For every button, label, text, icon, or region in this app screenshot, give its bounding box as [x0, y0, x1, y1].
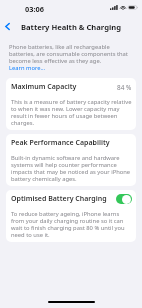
- staticText: 84 %: [117, 83, 132, 92]
- staticText: Built-in dynamic software and hardware s…: [11, 155, 132, 183]
- staticText: This is a measure of battery capacity re…: [11, 99, 132, 127]
- button[interactable]: Back: [1, 20, 14, 33]
- staticText: Battery Health & Charging: [21, 22, 121, 32]
- staticText: Phone batteries, like all rechargeable b…: [9, 44, 133, 65]
- staticText: To reduce battery ageing, iPhone learns …: [11, 211, 132, 239]
- staticText: 03:06: [25, 4, 44, 14]
- staticText: Optimised Battery Charging: [11, 194, 107, 204]
- staticText: Maximum Capacity: [11, 82, 77, 92]
- staticText: Peak Performance Capability: [11, 138, 110, 148]
- button[interactable]: Learn more...: [9, 65, 46, 72]
- button[interactable]: Optimised Battery Charging toggle: [116, 194, 132, 204]
